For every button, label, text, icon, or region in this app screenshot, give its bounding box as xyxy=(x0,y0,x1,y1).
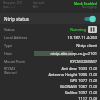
staticText: Ntrip port: 2101 xyxy=(3,1,23,5)
button[interactable]: RTCM3 xyxy=(0,65,100,100)
staticText: 更新レート xyxy=(3,5,17,8)
staticText: RTCM3 xyxy=(4,66,16,71)
staticText: Ant desc 1033 (1.0) xyxy=(61,66,97,71)
staticText: Sat count xyxy=(33,1,45,5)
staticText: No logging xyxy=(82,5,97,9)
staticText: Mount Point xyxy=(4,59,25,64)
staticText: ntrip.site.corp.co.jp:2101 xyxy=(50,51,97,56)
staticText: GPS 1077 (1.0) xyxy=(69,78,97,83)
staticText: Antenna Height 1006 (1.0) xyxy=(48,72,97,77)
button[interactable]: Pause xyxy=(88,26,97,33)
staticText: GLONASS 1087 (1.0) xyxy=(59,84,97,89)
staticText: Ntrip status xyxy=(4,16,29,22)
staticText: Local Address xyxy=(4,35,28,40)
staticText: 10.187.11.4:253 xyxy=(67,35,97,40)
button[interactable]: Ntrip status xyxy=(0,13,100,24)
staticText: 8Hz xyxy=(33,5,38,9)
button[interactable]: Ntrip status toggle xyxy=(83,15,96,23)
staticText: Mock Enabled xyxy=(74,1,97,5)
staticText: Ntrip client xyxy=(76,43,97,48)
button[interactable]: Mount Point xyxy=(0,57,100,65)
staticText: Galileo 1097 (1.0) xyxy=(64,90,97,95)
staticText: Host xyxy=(4,51,12,56)
staticText: Running xyxy=(70,27,86,32)
staticText: Type xyxy=(4,43,12,48)
staticText: RTCM32MSM7 xyxy=(69,59,97,64)
button[interactable]: Host xyxy=(0,49,100,57)
button[interactable]: Local Address xyxy=(0,33,100,41)
button[interactable]: Status xyxy=(0,25,100,33)
staticText: (Rate sec) xyxy=(4,71,17,75)
staticText: 1117 (1.0) xyxy=(78,96,97,100)
button[interactable]: Type xyxy=(0,41,100,49)
staticText: Status xyxy=(4,27,15,32)
